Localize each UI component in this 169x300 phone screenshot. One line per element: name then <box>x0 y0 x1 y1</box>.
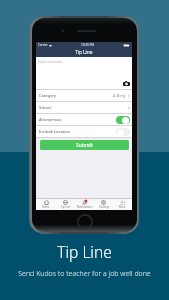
button[interactable]: Attach photo <box>122 79 130 87</box>
staticText: Notifications <box>77 205 93 209</box>
button[interactable]: Home button <box>77 214 93 230</box>
staticText: Settings <box>99 205 109 209</box>
staticText: Carrier <box>38 43 48 47</box>
staticText: Tip Line <box>75 49 93 56</box>
staticText: Include Location <box>39 129 71 134</box>
button[interactable]: School <box>36 102 132 113</box>
staticText: More <box>119 205 126 209</box>
button[interactable]: Notifications <box>75 199 94 210</box>
button[interactable]: Submit <box>40 140 129 150</box>
staticText: Anonymous <box>39 117 62 122</box>
staticText: Tip Line <box>61 205 71 209</box>
staticText: A Berg <box>113 93 126 98</box>
staticText: Category <box>39 93 57 98</box>
staticText: Enter comment <box>38 59 63 64</box>
button[interactable]: More <box>113 199 132 210</box>
staticText: 10:35 PM <box>81 43 94 47</box>
staticText: Submit <box>76 142 93 149</box>
button[interactable]: Settings <box>94 199 113 210</box>
staticText: Home <box>42 205 50 209</box>
button[interactable]: Include Location <box>36 126 132 137</box>
button[interactable]: Category <box>36 90 132 101</box>
button[interactable]: Home <box>36 199 56 210</box>
staticText: Tip Line <box>57 241 112 262</box>
staticText: School <box>39 105 52 110</box>
staticText: Send Kudos to teacher for a job well don… <box>18 269 151 279</box>
button[interactable]: Anonymous <box>36 114 132 125</box>
button[interactable]: Tip Line <box>56 199 75 210</box>
